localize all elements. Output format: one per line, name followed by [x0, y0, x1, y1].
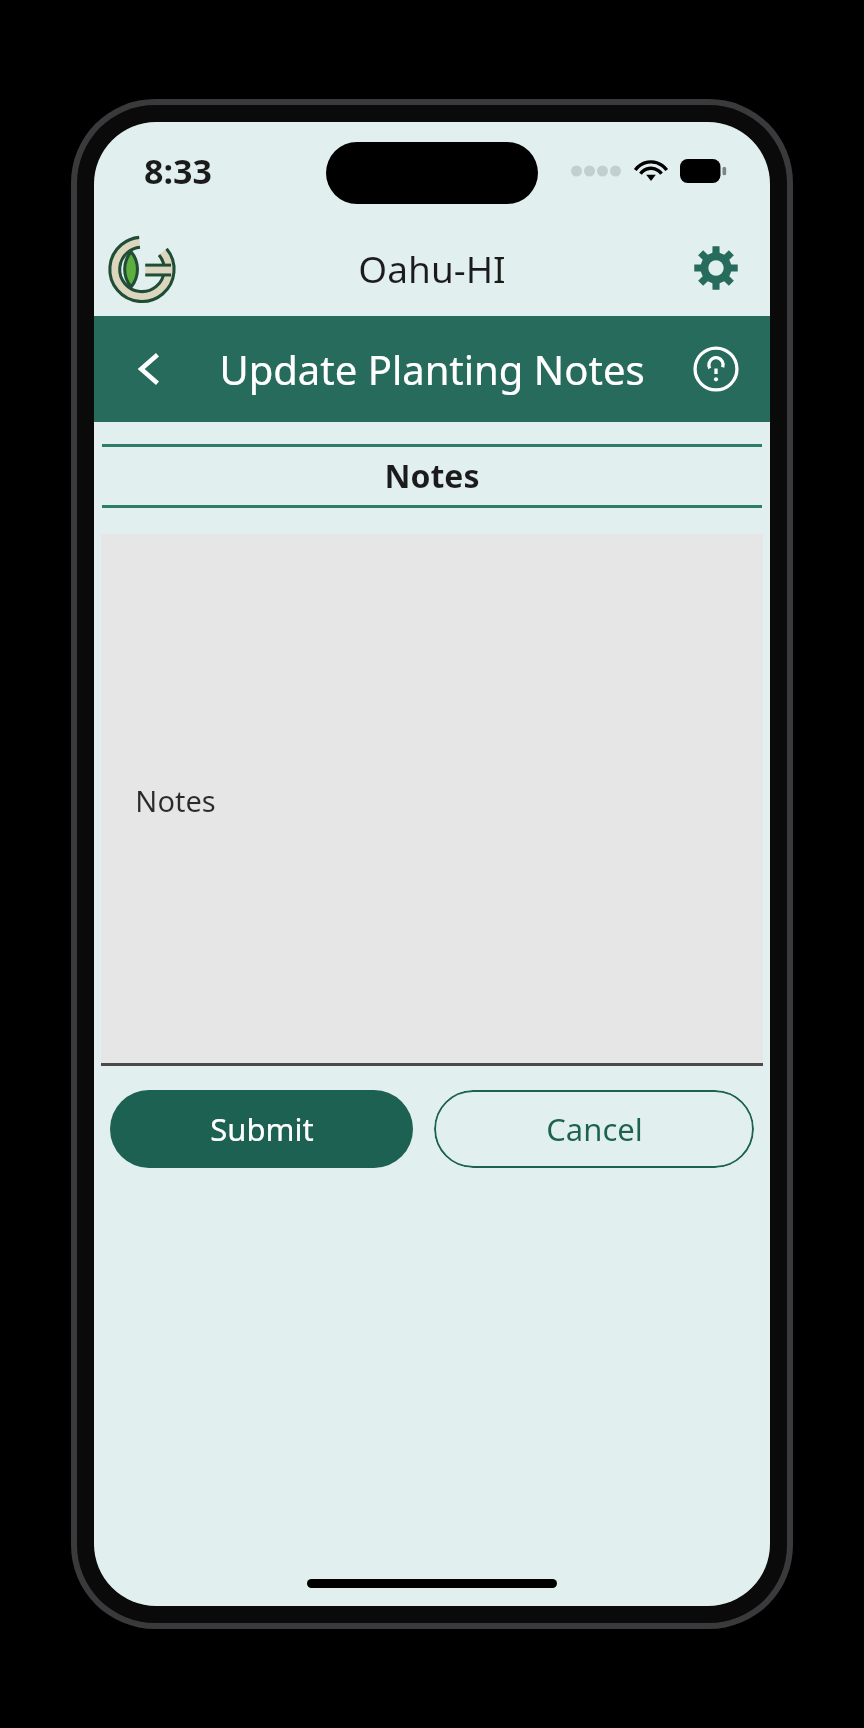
staticText: Oahu-HI: [358, 243, 506, 293]
button[interactable]: Submit: [110, 1090, 413, 1168]
button[interactable]: Notes: [101, 534, 763, 1066]
staticText: Notes: [384, 454, 480, 498]
button[interactable]: Settings: [686, 238, 746, 298]
staticText: 8:33: [144, 148, 212, 194]
button[interactable]: Back: [116, 335, 184, 403]
staticText: Submit: [210, 1108, 314, 1150]
button[interactable]: Help: [684, 337, 748, 401]
staticText: Cancel: [546, 1108, 643, 1150]
staticText: Update Planting Notes: [219, 342, 645, 396]
staticText: Notes: [135, 781, 216, 820]
button[interactable]: App logo: [108, 232, 180, 304]
button[interactable]: Cancel: [434, 1090, 754, 1168]
